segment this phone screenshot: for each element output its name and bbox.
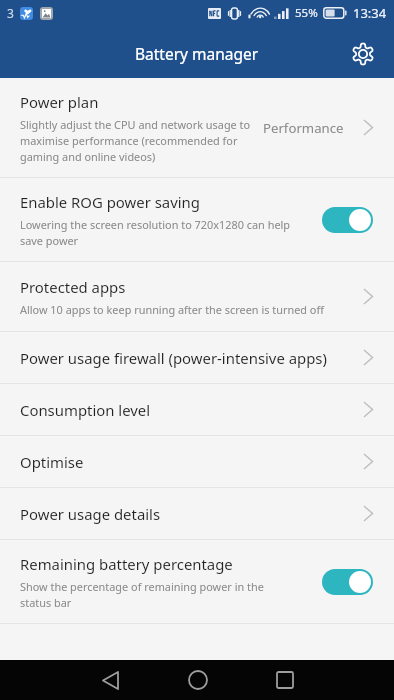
staticText: Protected apps bbox=[20, 277, 126, 297]
button[interactable]: Toggle bbox=[322, 569, 373, 595]
staticText: Power usage details bbox=[20, 504, 161, 524]
button[interactable]: Recents bbox=[263, 660, 307, 700]
button[interactable]: Remaining battery percentage bbox=[0, 540, 394, 623]
staticText: Slightly adjust the CPU and network usag… bbox=[20, 117, 251, 164]
staticText: Remaining battery percentage bbox=[20, 554, 233, 574]
staticText: Lowering the screen resolution to 720x12… bbox=[20, 217, 302, 248]
button[interactable]: Back bbox=[88, 660, 132, 700]
staticText: 13:34 bbox=[353, 4, 387, 22]
button[interactable]: Protected apps bbox=[0, 262, 394, 331]
staticText: Power usage firewall (power-intensive ap… bbox=[20, 348, 327, 368]
staticText: Battery manager bbox=[135, 43, 259, 64]
staticText: Power plan bbox=[20, 92, 99, 112]
staticText: Enable ROG power saving bbox=[20, 192, 200, 212]
button[interactable]: Optimise bbox=[0, 436, 394, 487]
button[interactable]: Power plan bbox=[0, 78, 394, 177]
staticText: Optimise bbox=[20, 452, 84, 472]
staticText: 55% bbox=[295, 5, 318, 21]
button[interactable]: Consumption level bbox=[0, 384, 394, 435]
staticText: Show the percentage of remaining power i… bbox=[20, 579, 292, 610]
staticText: Allow 10 apps to keep running after the … bbox=[20, 302, 350, 317]
button[interactable]: Settings bbox=[346, 37, 380, 71]
button[interactable]: Enable ROG power saving bbox=[0, 178, 394, 261]
button[interactable]: Power usage details bbox=[0, 488, 394, 539]
button[interactable]: Power usage firewall (power-intensive ap… bbox=[0, 332, 394, 383]
staticText: Consumption level bbox=[20, 400, 151, 420]
button[interactable]: Home bbox=[176, 660, 220, 700]
staticText: Performance bbox=[263, 119, 344, 137]
staticText: 3 bbox=[7, 5, 14, 21]
button[interactable]: Toggle bbox=[322, 207, 373, 233]
